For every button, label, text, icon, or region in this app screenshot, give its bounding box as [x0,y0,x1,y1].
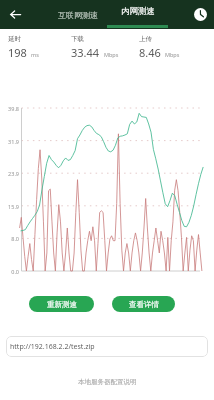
staticText: ms [31,51,39,58]
button[interactable]: 互联网测速 [46,0,110,29]
staticText: 0.0 [0,268,19,275]
staticText: 内网测速 [121,6,155,17]
button[interactable]: http://192.168.2.2/test.zip [6,336,208,357]
staticText: 下载 [71,35,84,43]
button[interactable]: Back [0,0,30,29]
staticText: 本地服务器配置说明 [78,378,137,386]
staticText: 198 [8,45,27,60]
staticText: 39.8 [0,105,19,112]
button[interactable]: History [186,0,214,29]
staticText: 上传 [139,35,152,43]
staticText: Mbps [165,51,180,58]
staticText: 查看详情 [129,300,159,309]
button[interactable]: 查看详情 [112,296,175,312]
staticText: 重新测速 [47,300,77,309]
staticText: 33.44 [71,45,100,60]
staticText: 延时 [8,35,21,43]
staticText: 互联网测速 [58,10,98,20]
staticText: http://192.168.2.2/test.zip [10,342,95,352]
staticText: 23.9 [0,170,19,177]
staticText: 15.9 [0,203,19,210]
staticText: Mbps [104,51,119,58]
button[interactable]: 内网测速 [107,0,168,29]
button[interactable]: 重新测速 [29,296,94,312]
staticText: 8.0 [0,235,19,242]
staticText: 31.9 [0,138,19,145]
staticText: 8.46 [139,45,161,60]
